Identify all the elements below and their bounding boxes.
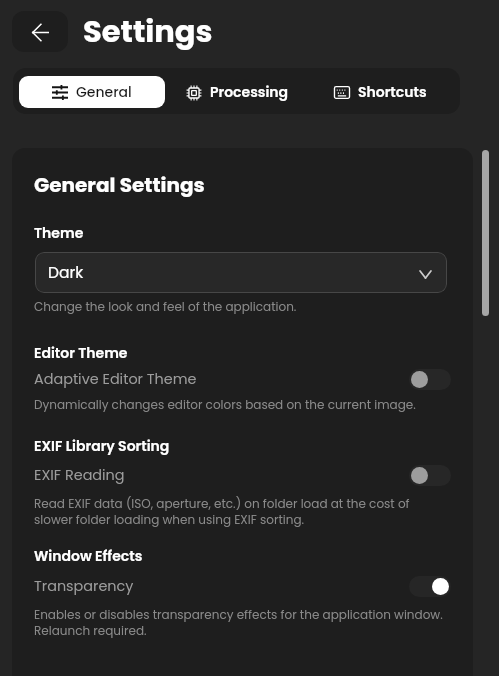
staticText: EXIF Library Sorting xyxy=(34,436,170,456)
staticText: Editor Theme xyxy=(34,343,128,363)
staticText: General Settings xyxy=(34,171,205,199)
button[interactable]: Adaptive Editor Theme xyxy=(12,369,473,395)
button[interactable]: Transparency xyxy=(12,576,473,602)
staticText: Settings xyxy=(83,10,213,53)
button[interactable]: Adaptive Editor Theme toggle xyxy=(409,369,451,390)
staticText: Window Effects xyxy=(34,546,143,566)
staticText: General xyxy=(76,82,132,102)
button[interactable]: Processing xyxy=(185,76,289,108)
staticText: Dark xyxy=(48,262,84,284)
staticText: Processing xyxy=(210,82,289,102)
staticText: Enables or disables transparency effects… xyxy=(34,606,451,639)
staticText: Change the look and feel of the applicat… xyxy=(34,298,297,315)
staticText: EXIF Reading xyxy=(34,465,125,485)
staticText: Adaptive Editor Theme xyxy=(34,369,197,389)
button[interactable]: Back xyxy=(12,11,68,52)
staticText: Read EXIF data (ISO, aperture, etc.) on … xyxy=(34,495,444,528)
staticText: Transparency xyxy=(34,576,134,596)
button[interactable]: EXIF Reading xyxy=(12,465,473,491)
staticText: Shortcuts xyxy=(358,82,427,102)
button[interactable]: Shortcuts xyxy=(333,76,427,108)
button[interactable]: General xyxy=(19,76,165,108)
button[interactable]: Transparency toggle xyxy=(409,576,451,597)
staticText: Dynamically changes editor colors based … xyxy=(34,396,416,413)
button[interactable]: EXIF Reading toggle xyxy=(409,465,451,486)
staticText: Theme xyxy=(34,223,84,243)
button[interactable]: Dark xyxy=(35,252,447,293)
